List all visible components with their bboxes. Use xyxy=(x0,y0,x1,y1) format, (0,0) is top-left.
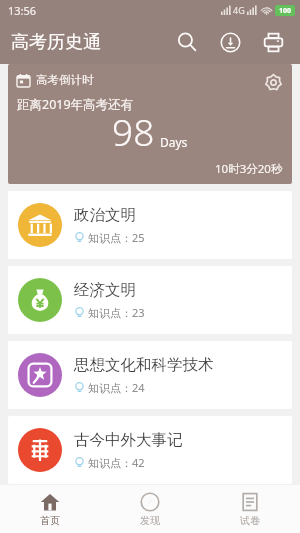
button[interactable]: 试卷 xyxy=(200,485,300,533)
button[interactable]: 首页 xyxy=(0,485,100,533)
staticText: 4G xyxy=(233,4,245,16)
staticText: 知识点：25 xyxy=(88,230,145,245)
button[interactable]: Print xyxy=(256,25,290,59)
staticText: 距离2019年高考还有 xyxy=(17,96,134,113)
staticText: 知识点：42 xyxy=(88,455,145,470)
staticText: 13:56 xyxy=(8,3,37,18)
button[interactable]: 政治文明 xyxy=(8,191,292,259)
button[interactable]: 经济文明 xyxy=(8,266,292,334)
staticText: 知识点：23 xyxy=(88,305,145,320)
staticText: 思想文化和科学技术 xyxy=(74,355,214,375)
button[interactable]: Search xyxy=(170,25,204,59)
staticText: 试卷 xyxy=(240,514,260,527)
staticText: 政治文明 xyxy=(74,205,136,225)
button[interactable]: Download xyxy=(213,25,247,59)
staticText: 经济文明 xyxy=(74,280,136,300)
button[interactable]: Settings xyxy=(258,67,288,98)
staticText: 10时3分20秒 xyxy=(215,161,283,177)
staticText: 首页 xyxy=(40,514,60,527)
staticText: 100 xyxy=(279,6,292,16)
staticText: Days xyxy=(160,134,188,150)
staticText: 发现 xyxy=(140,514,160,527)
staticText: 知识点：24 xyxy=(88,380,145,395)
staticText: 高考倒计时 xyxy=(36,73,94,87)
staticText: 高考历史通 xyxy=(11,31,101,54)
button[interactable]: 思想文化和科学技术 xyxy=(8,341,292,409)
staticText: 古今中外大事记 xyxy=(74,430,183,450)
button[interactable]: 古今中外大事记 xyxy=(8,416,292,484)
staticText: 98 xyxy=(112,106,155,156)
button[interactable]: 高考倒计时 xyxy=(8,64,292,184)
button[interactable]: 发现 xyxy=(100,485,200,533)
